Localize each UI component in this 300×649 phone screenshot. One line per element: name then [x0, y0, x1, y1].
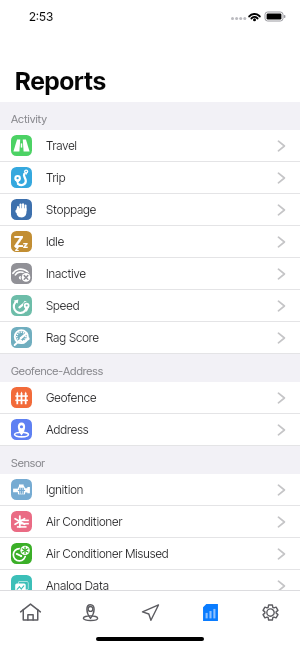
staticText: Geofence: [46, 390, 97, 405]
staticText: Trip: [46, 170, 66, 185]
staticText: Air Conditioner Misused: [46, 546, 169, 561]
staticText: Idle: [46, 234, 65, 249]
staticText: Address: [46, 422, 89, 437]
staticText: Geofence-Address: [11, 364, 104, 378]
button[interactable]: Home: [0, 591, 60, 633]
button[interactable]: Reports: [180, 591, 240, 633]
button[interactable]: Air Conditioner: [0, 506, 300, 538]
button[interactable]: Ignition: [0, 474, 300, 506]
staticText: 2:53: [29, 9, 54, 24]
button[interactable]: Locations: [60, 591, 120, 633]
staticText: Reports: [15, 66, 106, 96]
button[interactable]: Z: [0, 226, 300, 258]
button[interactable]: Speed: [0, 290, 300, 322]
staticText: Z: [14, 232, 24, 250]
staticText: Rag Score: [46, 330, 99, 345]
staticText: z: [15, 244, 19, 252]
staticText: Inactive: [46, 266, 86, 281]
button[interactable]: Stoppage: [0, 194, 300, 226]
button[interactable]: Analog Data: [0, 570, 300, 602]
button[interactable]: Rag Score: [0, 322, 300, 354]
staticText: Air Conditioner: [46, 514, 123, 529]
staticText: Activity: [11, 112, 47, 126]
button[interactable]: Settings: [240, 591, 300, 633]
button[interactable]: Navigate: [120, 591, 180, 633]
button[interactable]: Air Conditioner Misused: [0, 538, 300, 570]
button[interactable]: Address: [0, 414, 300, 446]
staticText: Ignition: [46, 482, 84, 497]
staticText: Stoppage: [46, 202, 97, 217]
button[interactable]: Trip: [0, 162, 300, 194]
staticText: Analog Data: [46, 578, 109, 593]
staticText: z: [23, 239, 28, 250]
button[interactable]: Travel: [0, 130, 300, 162]
staticText: Sensor: [11, 456, 46, 470]
staticText: Speed: [46, 298, 80, 313]
staticText: Travel: [46, 138, 77, 153]
button[interactable]: Inactive: [0, 258, 300, 290]
button[interactable]: Geofence: [0, 382, 300, 414]
